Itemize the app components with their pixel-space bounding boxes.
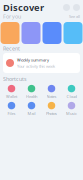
staticText: Recent <box>3 45 20 52</box>
staticText: Weekly summary <box>17 57 49 62</box>
button[interactable]: Health <box>22 85 41 99</box>
staticText: Your activity this week <box>17 63 55 69</box>
staticText: Shortcuts <box>3 75 27 83</box>
button[interactable]: Cloud <box>62 85 81 99</box>
button[interactable]: Search <box>63 4 70 11</box>
staticText: Photos <box>46 111 57 116</box>
staticText: Wallet <box>6 94 17 99</box>
staticText: See all <box>69 14 80 19</box>
button[interactable]: Feature <box>0 22 19 44</box>
button[interactable]: Account <box>73 4 80 11</box>
staticText: Music <box>66 111 77 116</box>
button[interactable]: Feature <box>42 22 61 44</box>
button[interactable]: Files <box>2 102 21 116</box>
staticText: Health <box>26 94 37 99</box>
button[interactable]: Feature <box>21 22 40 44</box>
button[interactable]: Music <box>62 102 81 116</box>
button[interactable]: Weekly summary <box>3 53 80 73</box>
button[interactable]: Feature <box>63 22 82 44</box>
staticText: Mail <box>27 111 35 116</box>
staticText: Discover <box>3 1 44 14</box>
button[interactable]: Wallet <box>2 85 21 99</box>
staticText: Notes <box>46 94 56 99</box>
button[interactable]: Photos <box>42 102 61 116</box>
staticText: Files <box>7 111 15 116</box>
button[interactable]: Notes <box>42 85 61 99</box>
button[interactable]: Mail <box>22 102 41 116</box>
staticText: For you <box>3 13 21 20</box>
button[interactable]: See all <box>69 14 80 19</box>
staticText: Cloud <box>66 94 76 99</box>
